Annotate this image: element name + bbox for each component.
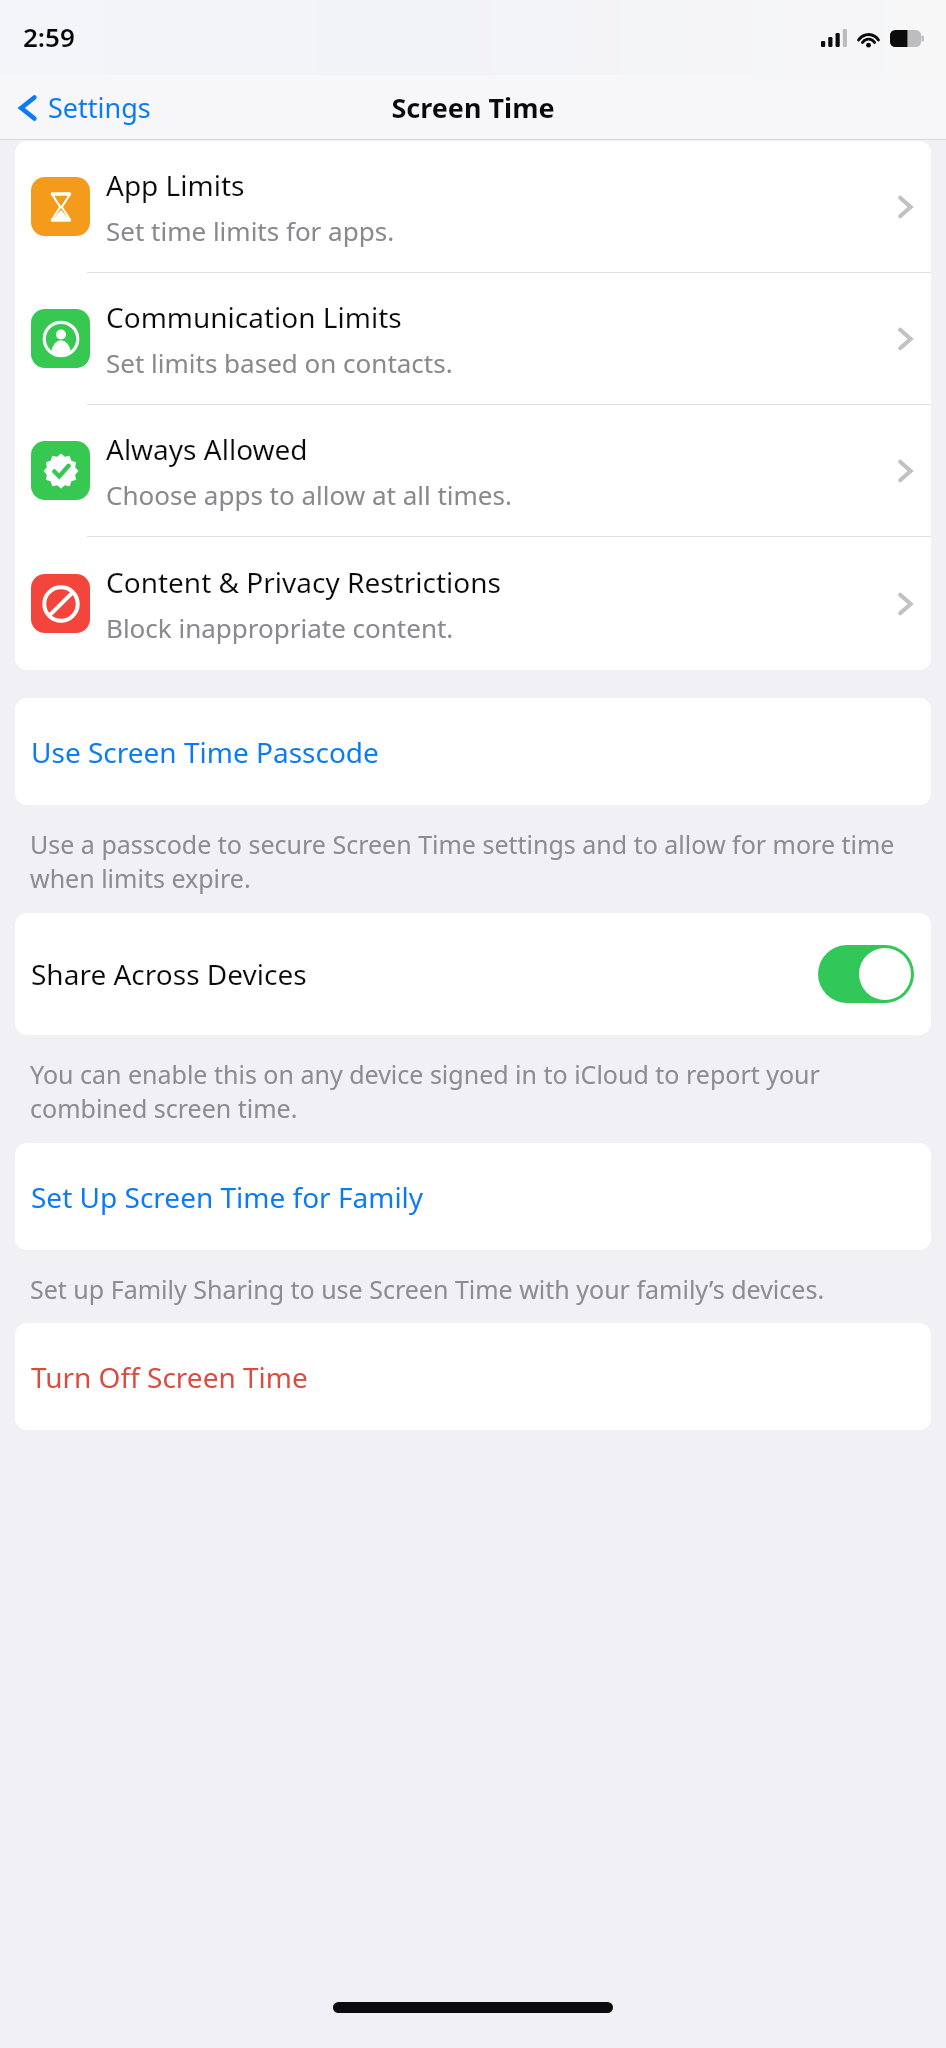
staticText: App Limits bbox=[106, 166, 245, 204]
staticText: Content & Privacy Restrictions bbox=[106, 563, 501, 601]
staticText: Always Allowed bbox=[106, 430, 308, 468]
staticText: Share Across Devices bbox=[31, 955, 307, 993]
staticText: Set Up Screen Time for Family bbox=[31, 1178, 424, 1216]
staticText: Use Screen Time Passcode bbox=[31, 733, 379, 771]
button[interactable]: Share Across Devices toggle, on bbox=[818, 945, 914, 1003]
staticText: You can enable this on any device signed… bbox=[30, 1057, 914, 1126]
button[interactable]: Communication Limits bbox=[15, 273, 931, 404]
staticText: Choose apps to allow at all times. bbox=[106, 477, 512, 512]
staticText: Set limits based on contacts. bbox=[106, 345, 453, 380]
staticText: Block inappropriate content. bbox=[106, 610, 454, 645]
staticText: Turn Off Screen Time bbox=[31, 1358, 308, 1396]
button[interactable]: Turn Off Screen Time bbox=[15, 1323, 931, 1430]
staticText: Set time limits for apps. bbox=[106, 213, 395, 248]
staticText: Communication Limits bbox=[106, 298, 402, 336]
button[interactable]: Content & Privacy Restrictions bbox=[15, 537, 931, 670]
staticText: Settings bbox=[48, 89, 151, 126]
button[interactable]: Use Screen Time Passcode bbox=[15, 698, 931, 805]
button[interactable]: Set Up Screen Time for Family bbox=[15, 1143, 931, 1250]
staticText: 2:59 bbox=[23, 19, 75, 54]
button[interactable]: App Limits bbox=[15, 141, 931, 272]
button[interactable]: Always Allowed bbox=[15, 405, 931, 536]
button[interactable]: Settings bbox=[0, 83, 163, 132]
button[interactable]: Share Across Devices bbox=[15, 913, 931, 1035]
staticText: Use a passcode to secure Screen Time set… bbox=[30, 827, 914, 896]
staticText: Screen Time bbox=[391, 89, 555, 126]
staticText: Set up Family Sharing to use Screen Time… bbox=[30, 1272, 825, 1306]
